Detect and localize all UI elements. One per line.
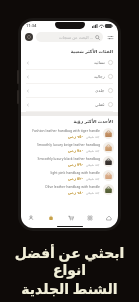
button[interactable]: Account (21, 211, 41, 224)
staticText: 11:34 (26, 23, 37, 28)
staticText: الشنط الجلدية (21, 279, 118, 298)
button[interactable]: Smoothly luxury black leather handbag (21, 154, 118, 168)
staticText: جلد طبيعي (86, 177, 100, 181)
staticText: جلد طبيعي (86, 149, 100, 153)
staticText: ٧٤٠ ر.س (68, 148, 84, 153)
staticText: عملي (95, 102, 105, 107)
button[interactable]: Filter (106, 33, 114, 41)
staticText: البحث عن منتجات ... (59, 35, 93, 40)
staticText: جلدي (95, 88, 105, 93)
staticText: نسائية (94, 60, 105, 65)
button[interactable]: البحث عن منتجات ... (36, 32, 103, 42)
button[interactable]: Cart (61, 211, 80, 224)
button[interactable]: Offers (41, 211, 61, 224)
staticText: ٦٥٠ ر.س (68, 134, 84, 139)
staticText: رجالية (94, 74, 105, 79)
staticText: الأحدث الأكثر رؤية (73, 118, 113, 124)
staticText: الفئات الأكثر شعبية (70, 48, 113, 54)
staticText: ٧٩٠ ر.س (68, 162, 84, 167)
staticText: ابحثي عن أفضل انواع (0, 243, 139, 278)
button[interactable]: نسائية (21, 56, 118, 69)
staticText: Smoothly luxury beige leather handbag (36, 142, 100, 147)
button[interactable]: رجالية (21, 70, 118, 83)
staticText: جلد طبيعي (86, 191, 100, 195)
staticText: جلد طبيعي (86, 163, 100, 167)
staticText: light pink handbag with handle (50, 170, 100, 175)
staticText: Fashion leather handbag with tiger handl… (32, 128, 100, 133)
staticText: Olive leather handbag with handle (45, 184, 100, 189)
button[interactable]: Profile (25, 33, 33, 41)
button[interactable]: جلدي (21, 84, 118, 97)
button[interactable]: عملي (21, 98, 118, 111)
staticText: ٥٢٠ ر.س (68, 176, 84, 181)
button[interactable]: Smoothly luxury beige leather handbag (21, 140, 118, 154)
staticText: Smoothly luxury black leather handbag (37, 156, 100, 161)
button[interactable]: Olive leather handbag with handle (21, 182, 118, 196)
staticText: ٦٨٠ ر.س (68, 190, 84, 195)
button[interactable]: Categories (80, 211, 99, 224)
button[interactable]: Home (99, 211, 118, 224)
staticText: جلد طبيعي (86, 135, 100, 139)
button[interactable]: Fashion leather handbag with tiger handl… (21, 126, 118, 140)
button[interactable]: light pink handbag with handle (21, 168, 118, 182)
